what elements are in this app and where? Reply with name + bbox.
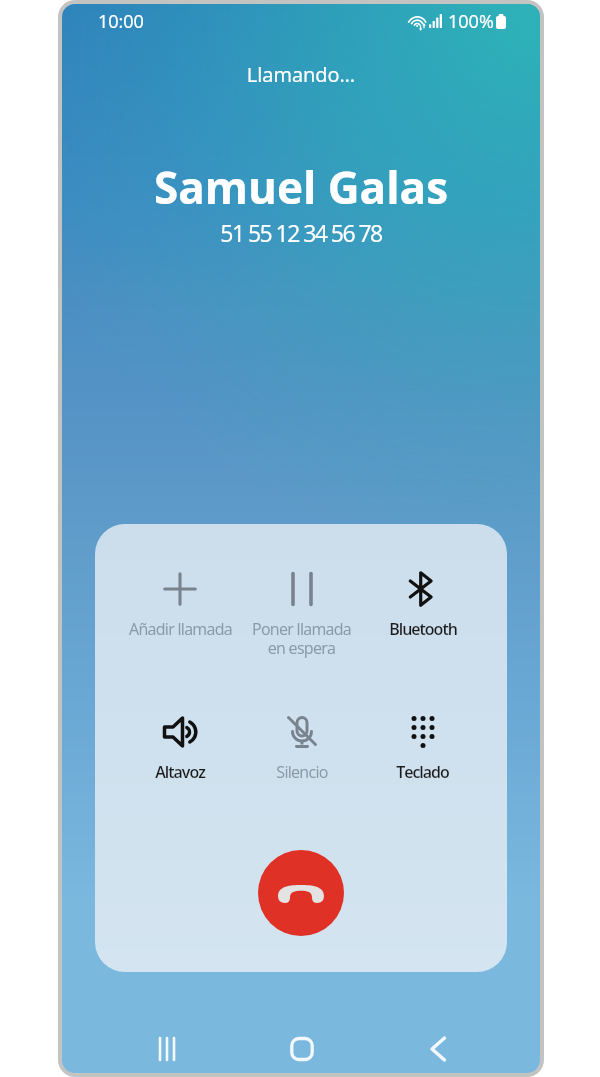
button[interactable]: Poner llamada en espera xyxy=(241,570,362,658)
staticText: Poner llamada en espera xyxy=(252,618,351,658)
button[interactable]: Añadir llamada xyxy=(119,570,241,640)
button[interactable]: Silencio xyxy=(241,713,362,783)
button[interactable]: Teclado xyxy=(362,713,483,783)
button[interactable]: Altavoz xyxy=(119,713,241,783)
staticText: Teclado xyxy=(396,761,449,783)
staticText: 10:00 xyxy=(98,9,144,34)
button[interactable]: Recientes xyxy=(99,1034,234,1064)
button[interactable]: Inicio xyxy=(234,1034,370,1064)
staticText: Samuel Galas xyxy=(62,157,540,217)
button[interactable]: Atrás xyxy=(370,1034,506,1064)
staticText: Silencio xyxy=(276,761,328,783)
staticText: Bluetooth xyxy=(389,618,457,640)
staticText: Llamando… xyxy=(62,61,540,88)
staticText: Añadir llamada xyxy=(129,618,232,640)
button[interactable]: Colgar xyxy=(258,850,344,936)
staticText: Altavoz xyxy=(155,761,205,783)
button[interactable]: Bluetooth xyxy=(362,570,483,640)
staticText: 51 55 12 34 56 78 xyxy=(62,217,540,248)
staticText: 100% xyxy=(448,9,494,34)
